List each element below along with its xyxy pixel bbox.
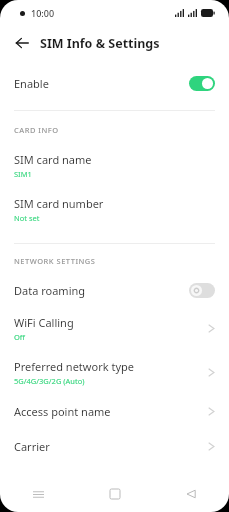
button[interactable]: Home	[77, 476, 153, 512]
button[interactable]: Access point name	[0, 394, 229, 429]
staticText: Enable	[14, 76, 189, 91]
staticText: Preferred network type	[14, 359, 134, 374]
staticText: SIM Info & Settings	[40, 35, 160, 52]
button[interactable]: Data roaming	[0, 274, 229, 306]
staticText: NETWORK SETTINGS	[14, 256, 96, 266]
button[interactable]: Recent apps	[0, 476, 77, 512]
button[interactable]: WiFi Calling	[0, 306, 229, 350]
staticText: Carrier	[14, 439, 208, 454]
staticText: CARD INFO	[14, 125, 59, 135]
staticText: Off	[14, 332, 26, 342]
staticText: SIM card name	[14, 152, 92, 167]
staticText: WiFi Calling	[14, 315, 74, 330]
staticText: 5G/4G/3G/2G (Auto)	[14, 376, 85, 386]
button[interactable]: Enable	[0, 66, 229, 100]
button[interactable]: SIM card name	[0, 143, 229, 187]
staticText: SIM card number	[14, 196, 104, 211]
button[interactable]: SIM card number	[0, 187, 229, 231]
staticText: SIM1	[14, 169, 32, 179]
staticText: Access point name	[14, 404, 208, 419]
button[interactable]: Carrier	[0, 429, 229, 464]
button[interactable]: Back	[153, 476, 229, 512]
button[interactable]: Preferred network type	[0, 350, 229, 394]
staticText: Data roaming	[14, 283, 189, 298]
button[interactable]: Back	[8, 29, 36, 57]
staticText: Not set	[14, 213, 40, 223]
staticText: 10:00	[31, 7, 55, 19]
